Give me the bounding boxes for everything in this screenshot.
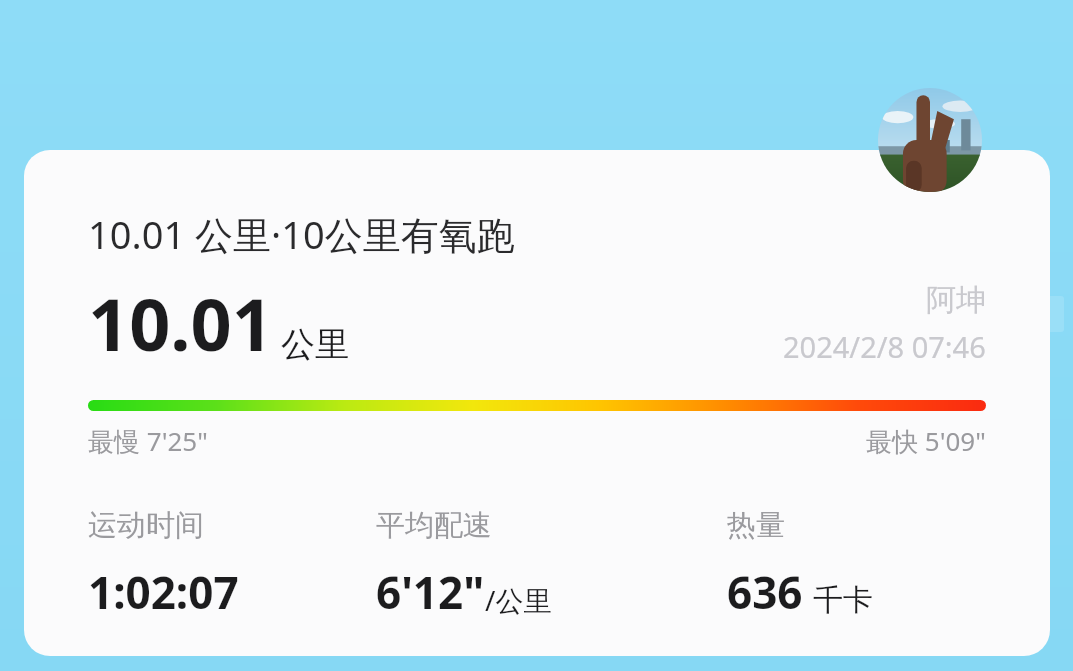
staticText: 阿坤 (926, 281, 986, 319)
staticText: 6'12" (376, 562, 485, 622)
staticText: 公里 (281, 323, 349, 366)
staticText: 千卡 (813, 581, 873, 619)
staticText: /公里 (485, 581, 552, 619)
staticText: 10.01 (88, 274, 273, 372)
staticText: 2024/2/8 07:46 (783, 327, 986, 366)
button[interactable]: 10.01 公里·10公里有氧跑 (24, 150, 1050, 656)
staticText: 10.01 公里·10公里有氧跑 (88, 208, 515, 260)
staticText: 最快 5'09" (866, 423, 986, 459)
staticText: 最慢 7'25" (88, 423, 208, 459)
button[interactable]: Profile photo (878, 88, 982, 192)
staticText: 1:02:07 (88, 562, 239, 622)
staticText: 平均配速 (376, 507, 492, 544)
staticText: 运动时间 (88, 507, 204, 544)
button[interactable]: 热量 (727, 507, 1050, 622)
staticText: 636 (727, 562, 803, 622)
button[interactable]: 运动时间 (88, 507, 376, 622)
staticText: 热量 (727, 507, 785, 544)
button[interactable]: 平均配速 (376, 507, 727, 622)
